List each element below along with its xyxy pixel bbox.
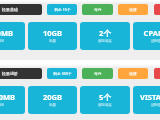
button[interactable]: 年付: [82, 68, 113, 79]
staticText: 年付: [94, 7, 102, 12]
button[interactable]: 轻量进阶: [0, 68, 42, 79]
button[interactable]: 续费: [118, 68, 148, 79]
staticText: 20GB: [28, 92, 77, 102]
staticText: 5个: [80, 92, 130, 102]
button[interactable]: 20GB: [28, 86, 77, 114]
button[interactable]: VISTAPNL: [133, 86, 160, 114]
staticText: 续费: [129, 7, 137, 12]
staticText: 剩余 15个: [54, 7, 71, 12]
button[interactable]: 2个: [80, 22, 130, 50]
staticText: 空间: [0, 39, 25, 43]
button[interactable]: 轻量基础: [0, 4, 42, 15]
staticText: 年付: [94, 71, 102, 76]
button[interactable]: 10GB: [28, 22, 77, 50]
button[interactable]: CPANEL: [133, 22, 160, 50]
button[interactable]: 年付: [82, 4, 113, 15]
staticText: CPANEL: [133, 28, 160, 38]
staticText: 500MB: [0, 28, 25, 38]
button[interactable]: 续费: [118, 4, 148, 15]
button[interactable]: 剩余 500个: [47, 68, 77, 79]
staticText: 续费: [129, 71, 137, 76]
staticText: 空间: [0, 103, 25, 107]
staticText: 剩余 500个: [53, 71, 72, 76]
staticText: 流量: [28, 39, 77, 43]
button[interactable]: 退订: [154, 4, 160, 15]
button[interactable]: 500MB: [0, 22, 25, 50]
staticText: 10GB: [28, 28, 77, 38]
staticText: 流量: [28, 103, 77, 107]
button[interactable]: 剩余 15个: [47, 4, 77, 15]
staticText: 控制面板: [133, 103, 160, 107]
staticText: VISTAPNL: [133, 92, 160, 102]
staticText: 2个: [80, 28, 130, 38]
button[interactable]: 退订: [154, 68, 160, 79]
staticText: 绑定域名: [80, 39, 130, 43]
staticText: 绑定域名: [80, 103, 130, 107]
staticText: 轻量基础: [2, 7, 18, 12]
staticText: 2000MB: [0, 92, 25, 102]
button[interactable]: 2000MB: [0, 86, 25, 114]
staticText: 轻量进阶: [2, 71, 18, 76]
button[interactable]: 5个: [80, 86, 130, 114]
staticText: 控制面板: [133, 39, 160, 43]
